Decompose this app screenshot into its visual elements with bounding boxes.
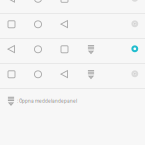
button[interactable]: Navigation bar layout option [0,0,145,12]
button[interactable]: Navigation bar layout option [0,14,145,38]
button[interactable]: Navigation bar layout option [0,64,145,88]
staticText: : Öppna meddelandepanel [17,98,77,104]
button[interactable]: Navigation bar layout option [0,39,145,63]
